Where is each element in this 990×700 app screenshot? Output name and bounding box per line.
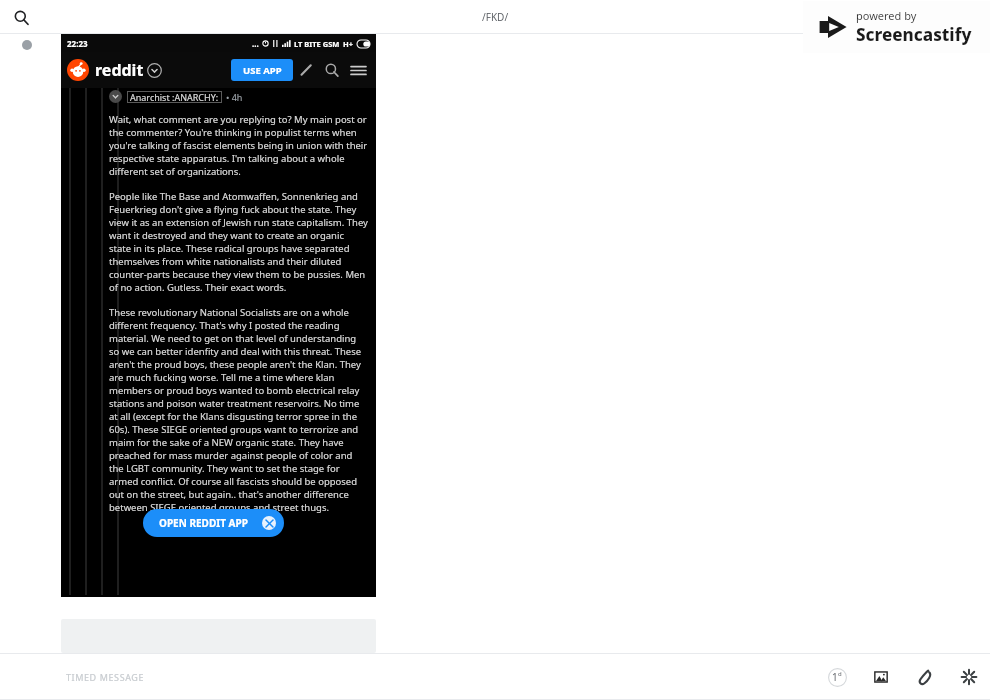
button[interactable]: USE APP bbox=[231, 59, 293, 81]
staticText: /FKD/ bbox=[482, 10, 509, 24]
button[interactable]: Compose bbox=[293, 57, 319, 83]
staticText: Wait, what comment are you replying to? … bbox=[109, 113, 368, 178]
staticText: reddit bbox=[95, 59, 144, 81]
staticText: Anarchist :ANARCHY: bbox=[130, 91, 219, 103]
staticText: These revolutionary National Socialists … bbox=[109, 306, 368, 514]
button[interactable]: Attach file bbox=[912, 664, 938, 690]
button[interactable]: Send photo bbox=[868, 664, 894, 690]
staticText: ... bbox=[252, 38, 259, 49]
staticText: H+ bbox=[343, 39, 354, 49]
button[interactable]: Close bbox=[262, 516, 276, 530]
button[interactable]: 22:23 bbox=[61, 34, 376, 597]
staticText: TIMED MESSAGE bbox=[66, 671, 145, 683]
button[interactable]: Menu bbox=[345, 57, 371, 83]
staticText: powered by bbox=[856, 8, 917, 23]
staticText: d bbox=[838, 670, 842, 678]
button[interactable]: OPEN REDDIT APP bbox=[143, 509, 284, 537]
staticText: OPEN REDDIT APP bbox=[159, 516, 248, 530]
button[interactable]: Info bbox=[960, 5, 984, 29]
button[interactable]: Call bbox=[936, 5, 960, 29]
button[interactable]: Self destruct timer bbox=[824, 664, 850, 690]
staticText: 1 bbox=[832, 670, 838, 684]
staticText: Screencastify bbox=[856, 23, 972, 46]
staticText: People like The Base and Atomwaffen, Son… bbox=[109, 190, 368, 294]
button[interactable]: Search bbox=[8, 4, 34, 30]
staticText: USE APP bbox=[243, 64, 282, 77]
staticText: 22:23 bbox=[67, 38, 88, 49]
staticText: • 4h bbox=[226, 91, 243, 103]
staticText: LT BITE GSM bbox=[294, 39, 340, 49]
button[interactable]: Search bbox=[319, 57, 345, 83]
button[interactable]: Effects bbox=[956, 664, 982, 690]
